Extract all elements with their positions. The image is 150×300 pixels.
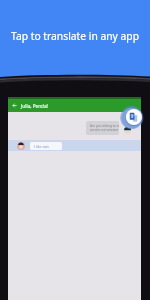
staticText: Are you asking to my service not answer	[90, 124, 119, 132]
button[interactable]: Translate	[129, 112, 139, 122]
other: Tap to translate	[0, 0, 150, 300]
other: Back	[12, 103, 17, 108]
button[interactable]: Are you asking to my service not answer	[86, 121, 119, 135]
staticText: Tap to translate in any app	[0, 29, 150, 43]
staticText: Julia, Pendal	[21, 103, 48, 109]
button[interactable]: Back	[8, 97, 141, 112]
button[interactable]: I like cats	[30, 142, 62, 150]
staticText: I like cats	[34, 144, 49, 149]
